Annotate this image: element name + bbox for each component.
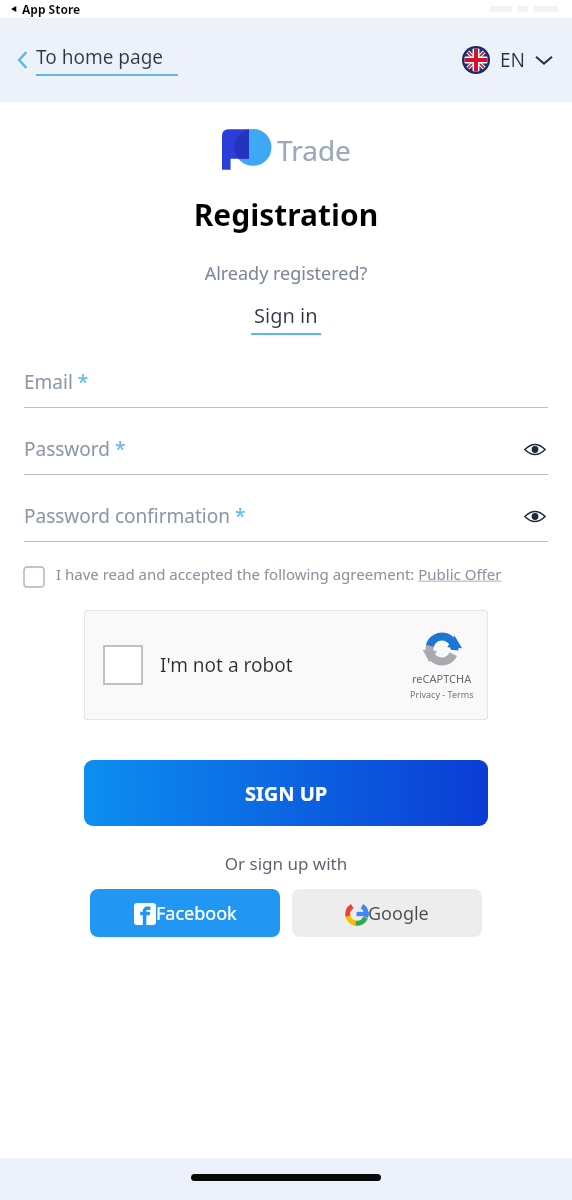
staticText: To home page [36, 44, 164, 70]
staticText: Email * [24, 369, 89, 395]
other: Language [462, 46, 490, 74]
staticText: App Store [22, 1, 81, 17]
staticText: Privacy - Terms [410, 688, 474, 700]
staticText: Already registered? [0, 261, 572, 286]
button[interactable]: I have read and accepted the following a… [24, 564, 548, 584]
staticText: EN [500, 47, 526, 73]
staticText: Facebook [156, 901, 237, 926]
staticText: I'm not a robot [160, 652, 293, 678]
staticText: Trade [277, 131, 351, 169]
staticText: Registration [0, 194, 572, 235]
button[interactable]: Show password [522, 436, 548, 462]
staticText: reCAPTCHA [412, 671, 472, 686]
button[interactable]: Show password [522, 503, 548, 529]
staticText: Sign in [254, 302, 318, 329]
staticText: Google [368, 901, 429, 926]
button[interactable]: SIGN UP [84, 760, 488, 826]
button[interactable]: Email * [24, 369, 548, 408]
button[interactable]: Back [16, 44, 178, 76]
staticText: Or sign up with [0, 852, 572, 875]
staticText: Password * [24, 436, 126, 462]
button[interactable]: Language [462, 46, 552, 74]
staticText: Password confirmation * [24, 503, 246, 529]
button[interactable]: Facebook [90, 889, 280, 937]
button[interactable]: Password * [24, 436, 548, 475]
staticText: I have read and accepted the following a… [56, 564, 502, 584]
other: Back [16, 49, 30, 71]
staticText: SIGN UP [245, 780, 328, 807]
button[interactable]: Sign in [251, 302, 321, 335]
button[interactable]: Google [292, 889, 482, 937]
button[interactable]: I'm not a robot [84, 610, 488, 720]
button[interactable]: Password confirmation * [24, 503, 548, 542]
